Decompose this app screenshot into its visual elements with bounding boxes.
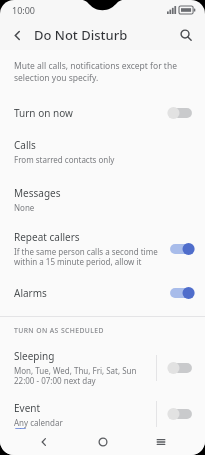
button[interactable]: Back bbox=[4, 22, 30, 48]
staticText: Calls bbox=[14, 138, 36, 152]
staticText: Mute all calls, notifications except for… bbox=[14, 60, 191, 84]
staticText: From starred contacts only bbox=[14, 154, 115, 165]
staticText: Mon, Tue, Wed, Thu, Fri, Sat, Sun 22:00 … bbox=[14, 365, 137, 387]
button[interactable]: Repeat callers bbox=[0, 228, 205, 270]
staticText: Repeat callers bbox=[14, 230, 80, 244]
staticText: TURN ON AS SCHEDULED bbox=[14, 326, 104, 335]
staticText: 10:00 bbox=[12, 4, 36, 16]
button[interactable]: Toggle off bbox=[167, 360, 195, 376]
button[interactable]: Toggle off bbox=[167, 406, 195, 422]
button[interactable]: Toggle on bbox=[167, 241, 195, 257]
staticText: Turn on now bbox=[14, 106, 73, 120]
staticText: Any calendar bbox=[14, 417, 63, 428]
button[interactable]: Alarms bbox=[0, 278, 205, 308]
staticText: Sleeping bbox=[14, 349, 55, 363]
button[interactable]: Sleeping bbox=[0, 347, 205, 389]
staticText: Do Not Disturb bbox=[34, 26, 128, 44]
button[interactable]: Calls bbox=[0, 132, 205, 170]
button[interactable]: Event bbox=[0, 399, 205, 429]
staticText: None bbox=[14, 202, 35, 213]
button[interactable]: Search bbox=[173, 22, 199, 48]
button[interactable]: Recents bbox=[146, 429, 176, 455]
button[interactable]: Toggle off bbox=[167, 105, 195, 121]
staticText: Messages bbox=[14, 186, 61, 200]
staticText: If the same person calls a second time w… bbox=[14, 246, 167, 268]
staticText: Event bbox=[14, 401, 41, 415]
button[interactable]: Turn on now bbox=[0, 98, 205, 128]
button[interactable]: Back bbox=[29, 429, 59, 455]
button[interactable]: Toggle on bbox=[167, 285, 195, 301]
staticText: Alarms bbox=[14, 286, 47, 300]
button[interactable]: Messages bbox=[0, 180, 205, 218]
button[interactable]: Home bbox=[88, 429, 118, 455]
